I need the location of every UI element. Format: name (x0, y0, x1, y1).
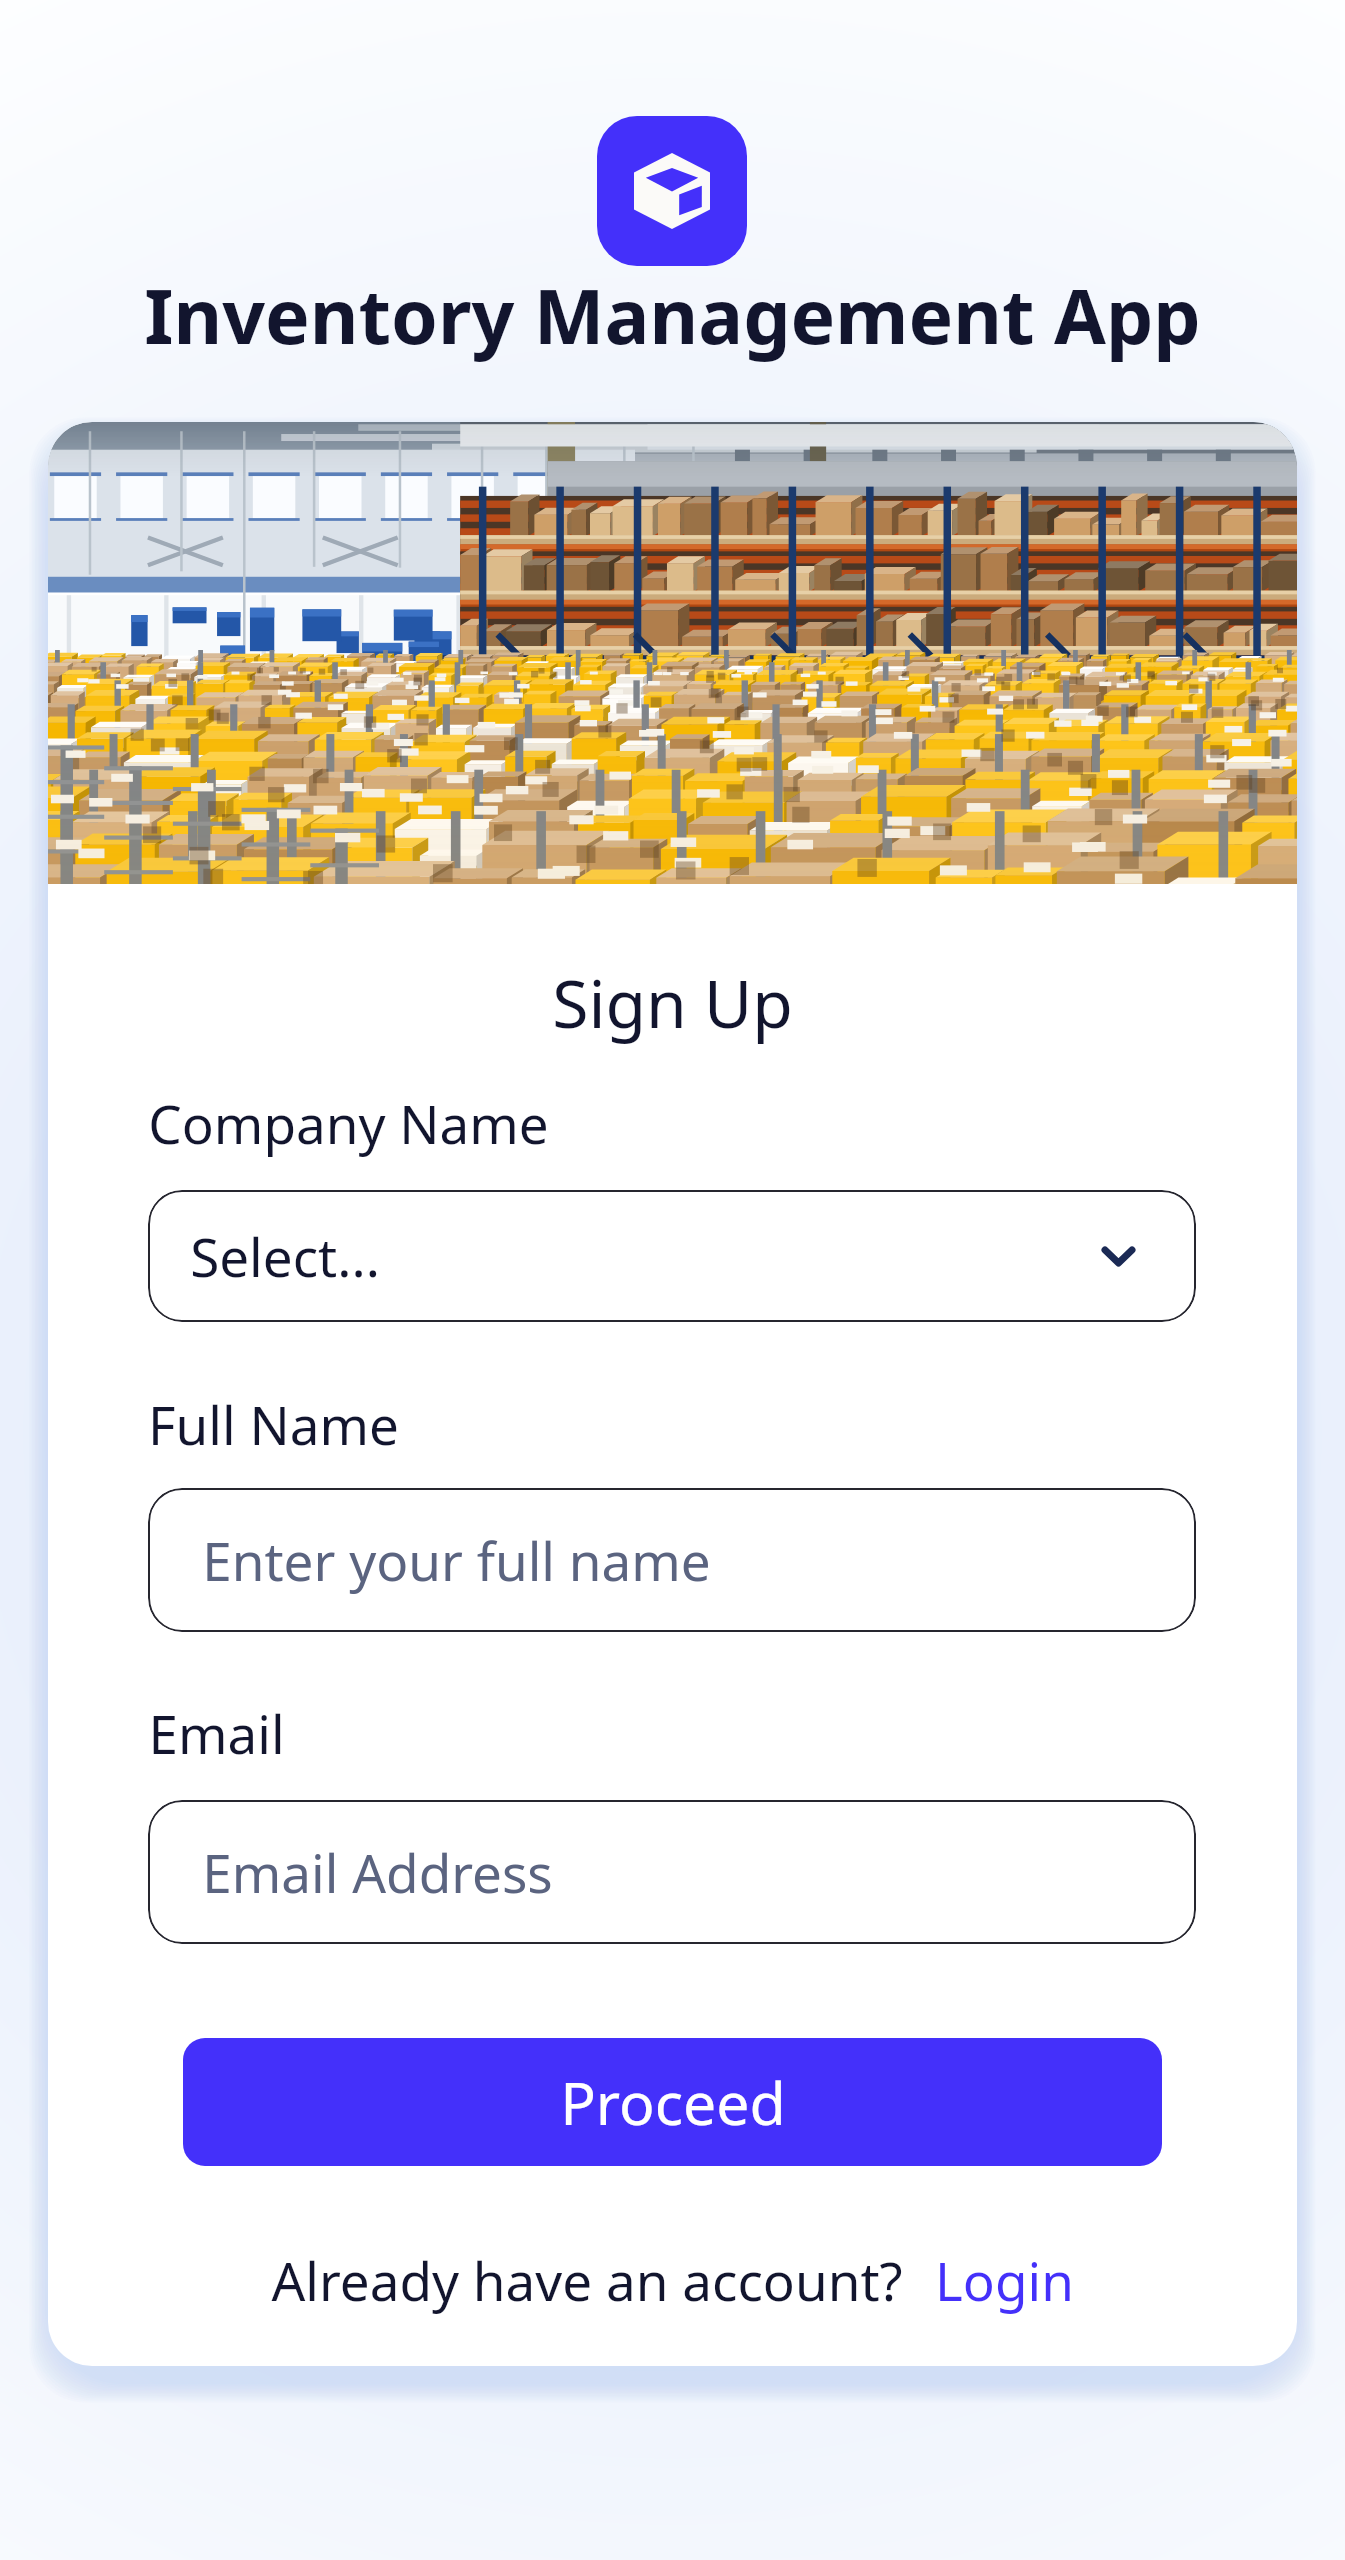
staticText: Full Name (148, 1388, 399, 1460)
button[interactable]: Proceed (183, 2038, 1162, 2166)
staticText: Proceed (560, 2062, 786, 2142)
staticText: Login (935, 2244, 1074, 2316)
staticText: Inventory Management App (144, 264, 1201, 366)
staticText: Sign Up (552, 957, 793, 1047)
button[interactable]: Login (935, 2244, 1074, 2316)
staticText: Select... (190, 1220, 380, 1292)
other: App logo (597, 116, 747, 266)
staticText: Email (148, 1697, 285, 1769)
staticText: Email Address (202, 1836, 553, 1908)
button[interactable]: Select... (148, 1190, 1196, 1322)
staticText: Enter your full name (202, 1524, 711, 1596)
staticText: Company Name (148, 1087, 549, 1159)
button[interactable]: Enter your full name (148, 1488, 1196, 1632)
staticText: Already have an account? (271, 2244, 903, 2316)
other: Open company list (1105, 1250, 1132, 1263)
button[interactable]: Email Address (148, 1800, 1196, 1944)
